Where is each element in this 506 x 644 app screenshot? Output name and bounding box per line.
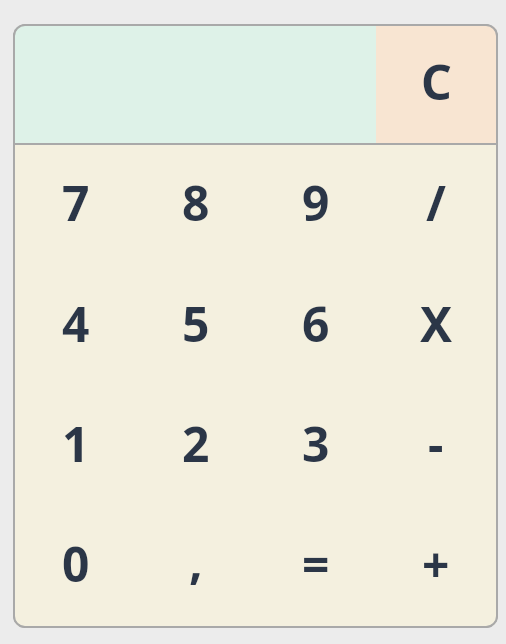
staticText: + bbox=[422, 531, 450, 596]
staticText: 1 bbox=[62, 411, 90, 476]
staticText: , bbox=[189, 528, 203, 593]
button[interactable]: 3 bbox=[256, 386, 376, 506]
staticText: 8 bbox=[182, 170, 210, 235]
button[interactable]: 2 bbox=[136, 386, 256, 506]
staticText: = bbox=[302, 531, 330, 596]
button[interactable]: , bbox=[136, 506, 256, 626]
staticText: 0 bbox=[62, 531, 90, 596]
button[interactable]: 6 bbox=[256, 266, 376, 386]
button[interactable]: + bbox=[376, 506, 496, 626]
button[interactable]: 7 bbox=[15, 145, 136, 266]
button[interactable]: 9 bbox=[256, 145, 376, 266]
button[interactable]: 8 bbox=[136, 145, 256, 266]
staticText: 6 bbox=[302, 291, 330, 356]
button[interactable]: 1 bbox=[15, 386, 136, 506]
staticText: 2 bbox=[182, 411, 210, 476]
staticText: 3 bbox=[302, 411, 330, 476]
staticText: C bbox=[421, 49, 452, 114]
button[interactable]: X bbox=[376, 266, 496, 386]
button[interactable]: = bbox=[256, 506, 376, 626]
button[interactable]: - bbox=[376, 386, 496, 506]
staticText: 5 bbox=[182, 291, 210, 356]
staticText: 9 bbox=[302, 170, 330, 235]
staticText: 7 bbox=[62, 170, 90, 235]
button[interactable]: C bbox=[376, 26, 496, 143]
staticText: X bbox=[420, 291, 453, 356]
button[interactable]: 0 bbox=[15, 506, 136, 626]
button[interactable]: 5 bbox=[136, 266, 256, 386]
staticText: 4 bbox=[62, 291, 90, 356]
staticText: / bbox=[426, 170, 446, 235]
button[interactable]: / bbox=[376, 145, 496, 266]
staticText: - bbox=[428, 411, 444, 476]
button[interactable]: 4 bbox=[15, 266, 136, 386]
